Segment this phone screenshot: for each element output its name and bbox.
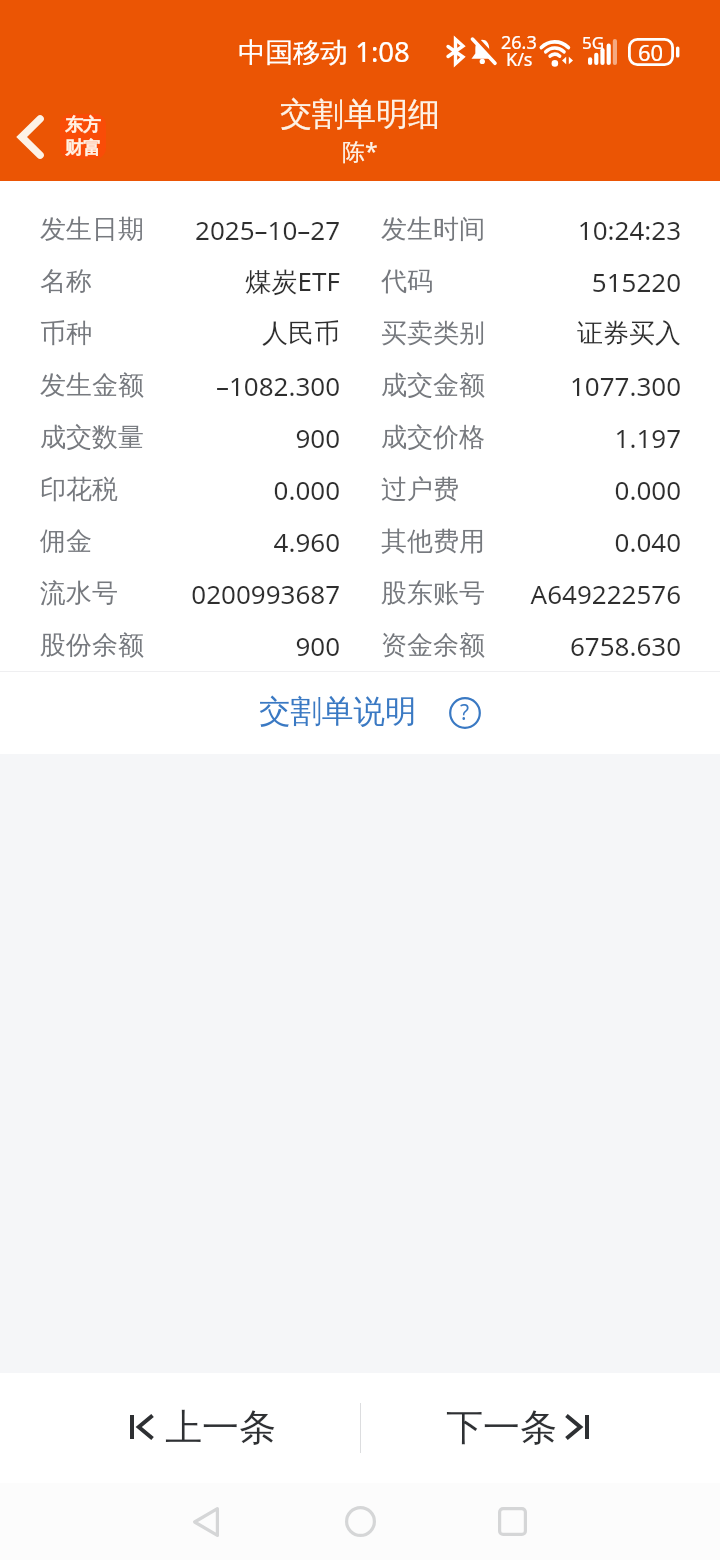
staticText: 印花税 xyxy=(40,473,118,506)
staticText: 0200993687 xyxy=(150,576,340,611)
staticText: 煤炭ETF xyxy=(150,263,340,299)
staticText: 发生时间 xyxy=(381,213,485,246)
staticText: 名称 xyxy=(40,265,92,298)
button[interactable]: Back xyxy=(0,105,118,162)
staticText: 900 xyxy=(150,420,340,455)
staticText: 10:24:23 xyxy=(451,212,681,247)
staticText: 东方 xyxy=(65,114,101,137)
staticText: 佣金 xyxy=(40,525,92,558)
staticText: 1.197 xyxy=(451,420,681,455)
staticText: 4.960 xyxy=(150,524,340,559)
staticText: 0.000 xyxy=(451,472,681,507)
staticText: A649222576 xyxy=(451,576,681,611)
staticText: K/s xyxy=(506,47,533,72)
staticText: 过户费 xyxy=(381,473,459,506)
button[interactable]: 交割单说明 xyxy=(0,672,720,754)
button[interactable]: Back xyxy=(158,1483,254,1560)
staticText: 下一条 xyxy=(446,1404,557,1451)
staticText: 买卖类别 xyxy=(381,317,485,350)
staticText: 其他费用 xyxy=(381,525,485,558)
staticText: 发生日期 xyxy=(40,213,144,246)
staticText: 财富 xyxy=(65,137,101,159)
staticText: 0.000 xyxy=(150,472,340,507)
staticText: 成交价格 xyxy=(381,421,485,454)
staticText: 股份余额 xyxy=(40,629,144,662)
staticText: 900 xyxy=(150,628,340,663)
staticText: 6758.630 xyxy=(451,628,681,663)
staticText: 中国移动 1:08 xyxy=(238,33,410,71)
staticText: 流水号 xyxy=(40,577,118,610)
staticText: 币种 xyxy=(40,317,92,350)
staticText: 交割单说明 xyxy=(259,692,417,732)
staticText: 证券买入 xyxy=(451,317,681,350)
staticText: 515220 xyxy=(451,264,681,299)
staticText: 成交金额 xyxy=(381,369,485,402)
staticText: 0.040 xyxy=(451,524,681,559)
button[interactable]: Recents xyxy=(464,1483,560,1560)
staticText: 60 xyxy=(638,37,664,65)
button[interactable]: 下一条 xyxy=(360,1373,720,1483)
staticText: –1082.300 xyxy=(150,368,340,403)
staticText: 成交数量 xyxy=(40,421,144,454)
staticText: 陈* xyxy=(342,135,378,166)
staticText: 人民币 xyxy=(150,317,340,350)
staticText: 1077.300 xyxy=(451,368,681,403)
staticText: 发生金额 xyxy=(40,369,144,402)
button[interactable]: 上一条 xyxy=(0,1373,360,1483)
button[interactable]: Home xyxy=(312,1483,408,1560)
staticText: 股东账号 xyxy=(381,577,485,610)
staticText: 5G xyxy=(582,31,605,54)
staticText: 上一条 xyxy=(165,1404,276,1451)
staticText: 26.3 xyxy=(501,30,537,55)
staticText: 交割单明细 xyxy=(280,94,440,134)
staticText: 代码 xyxy=(381,265,433,298)
staticText: 2025–10–27 xyxy=(150,212,340,247)
staticText: 资金余额 xyxy=(381,629,485,662)
staticText: ? xyxy=(460,698,470,727)
